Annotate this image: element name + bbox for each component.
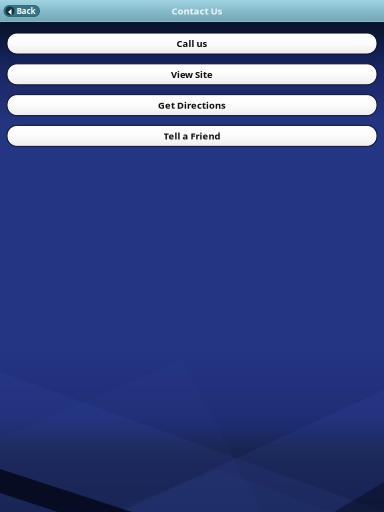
button[interactable]: Get Directions [7,95,377,116]
staticText: Back [16,6,35,16]
staticText: Call us [176,37,207,50]
button[interactable]: Tell a Friend [7,125,377,146]
staticText: Contact Us [171,5,222,17]
button[interactable]: Back [4,5,39,16]
staticText: View Site [171,68,213,80]
staticText: Tell a Friend [163,130,220,142]
button[interactable]: View Site [7,64,377,85]
staticText: Get Directions [158,99,226,111]
button[interactable]: Call us [7,33,377,54]
